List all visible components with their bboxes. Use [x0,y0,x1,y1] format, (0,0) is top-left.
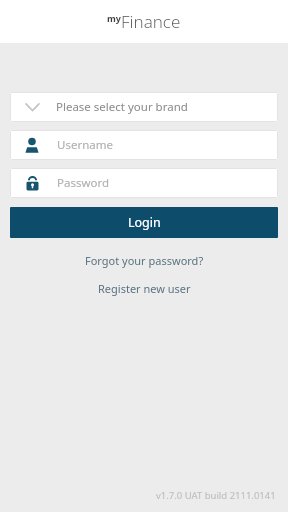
button[interactable]: Password [10,168,278,198]
staticText: Login [128,214,161,231]
button[interactable]: Expand brand list [10,92,278,122]
staticText: v1.7.0 UAT build 2111.0141 [156,489,276,502]
staticText: Username [57,137,113,153]
staticText: Please select your brand [56,99,188,115]
staticText: my [107,12,121,24]
other: Expand brand list [22,97,42,117]
staticText: Finance [121,10,181,33]
button[interactable]: Forgot your password? [0,249,288,272]
button[interactable]: Username [10,130,278,160]
staticText: Password [57,175,110,191]
button[interactable]: Register new user [0,277,288,300]
staticText: Forgot your password? [85,253,204,268]
button[interactable]: Login [10,207,278,238]
staticText: Register new user [98,281,191,296]
